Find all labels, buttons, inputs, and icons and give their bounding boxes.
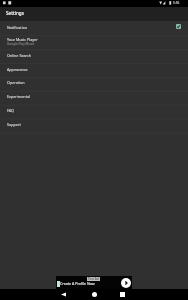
button[interactable]: Notification — [0, 21, 188, 35]
button[interactable]: Notification enabled — [176, 24, 181, 29]
staticText: Experimental — [7, 94, 30, 99]
button[interactable]: Recents — [113, 289, 131, 300]
staticText: Notification — [7, 25, 28, 30]
staticText: FAQ — [7, 108, 15, 113]
button[interactable]: Online Search — [0, 49, 188, 63]
button[interactable]: FAQ — [0, 104, 188, 118]
button[interactable]: Create A Profile Now — [56, 276, 132, 289]
button[interactable]: Experimental — [0, 90, 188, 104]
staticText: Google Play Music — [7, 42, 35, 46]
staticText: Support — [7, 122, 21, 127]
button[interactable]: Operation — [0, 76, 188, 90]
button[interactable]: Support — [0, 118, 188, 132]
staticText: Settings — [6, 10, 24, 16]
staticText: Your Music Player — [7, 37, 38, 42]
staticText: Test Ad — [88, 277, 99, 281]
staticText: Operation — [7, 80, 25, 85]
staticText: Appearance — [7, 67, 28, 72]
button[interactable]: Your Music Player — [0, 35, 188, 49]
button[interactable]: Back — [54, 289, 72, 300]
staticText: Create A Profile Now — [60, 281, 95, 286]
staticText: 5:56 — [173, 1, 180, 5]
button[interactable]: Home — [85, 289, 103, 300]
staticText: Online Search — [7, 53, 32, 58]
button[interactable]: Appearance — [0, 63, 188, 77]
